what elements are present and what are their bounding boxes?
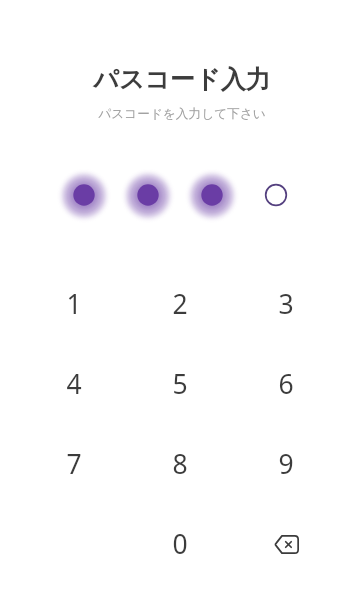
button[interactable]: 4: [21, 344, 127, 424]
staticText: 0: [172, 526, 188, 562]
button[interactable]: 2: [127, 264, 233, 344]
staticText: 5: [172, 366, 188, 402]
button[interactable]: Backspace: [233, 504, 339, 584]
staticText: パスコード入力: [93, 64, 271, 95]
staticText: パスコードを入力して下さい: [98, 106, 266, 122]
button[interactable]: 9: [233, 424, 339, 504]
staticText: 3: [278, 286, 294, 322]
staticText: 4: [66, 366, 82, 402]
staticText: 9: [278, 446, 294, 482]
button[interactable]: 1: [21, 264, 127, 344]
button[interactable]: 7: [21, 424, 127, 504]
button[interactable]: 0: [127, 504, 233, 584]
staticText: 1: [66, 286, 82, 322]
button[interactable]: 8: [127, 424, 233, 504]
button[interactable]: 3: [233, 264, 339, 344]
staticText: 7: [66, 446, 82, 482]
button[interactable]: 6: [233, 344, 339, 424]
staticText: 8: [172, 446, 188, 482]
staticText: 6: [278, 366, 294, 402]
button[interactable]: 5: [127, 344, 233, 424]
staticText: 2: [172, 286, 188, 322]
